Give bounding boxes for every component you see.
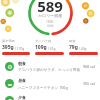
staticText: 589: [37, 0, 63, 16]
staticText: / 40g: [78, 47, 87, 51]
staticText: / 41g: [47, 47, 56, 51]
button[interactable]: 昼食: [0, 75, 100, 92]
staticText: / 170g: [14, 47, 25, 51]
staticText: 朝食: [18, 61, 26, 66]
button[interactable]: 夕食: [0, 92, 100, 100]
staticText: 79g: [69, 44, 78, 51]
staticText: 炭水化物: [2, 39, 15, 43]
button[interactable]: 朝食: [0, 58, 100, 75]
staticText: 昼食: [18, 78, 26, 83]
staticText: 夕食: [18, 95, 26, 100]
staticText: 脂質: [69, 39, 76, 43]
staticText: 395g: [2, 44, 14, 51]
staticText: ハニーマスタードチキン 150g: [18, 85, 68, 90]
staticText: アスパラと卵のサラダ、たっぷり野菜: [18, 68, 81, 73]
staticText: 1880: [46, 20, 54, 24]
staticText: タンパク質: [35, 39, 52, 43]
staticText: カロリー残量: [38, 13, 63, 18]
staticText: 968 cal: [83, 64, 95, 69]
staticText: 355 cal: [83, 81, 95, 86]
staticText: 109g: [35, 44, 47, 51]
staticText: 目標: [47, 24, 54, 28]
